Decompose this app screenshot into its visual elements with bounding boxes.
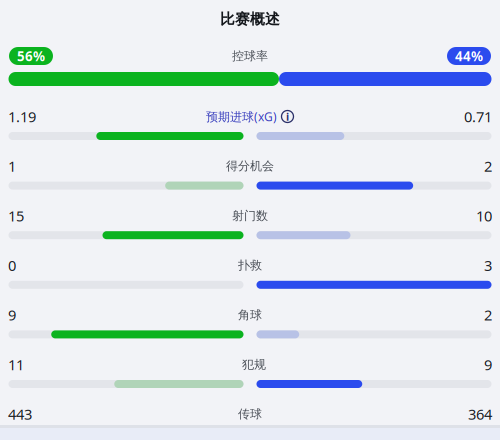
- staticText: 9: [484, 355, 492, 374]
- staticText: 2: [484, 305, 492, 325]
- staticText: 控球率: [232, 49, 268, 63]
- button[interactable]: 关于预期进球 xG: [206, 108, 294, 124]
- staticText: 1: [8, 156, 16, 176]
- staticText: 44%: [455, 47, 483, 65]
- staticText: 射门数: [232, 208, 268, 223]
- staticText: 扑救: [238, 258, 262, 273]
- staticText: 预期进球(xG): [206, 108, 277, 124]
- staticText: 9: [8, 305, 16, 325]
- staticText: 0.71: [464, 107, 492, 126]
- staticText: 得分机会: [226, 159, 274, 173]
- staticText: 10: [476, 206, 492, 225]
- staticText: 2: [484, 156, 492, 176]
- staticText: 443: [8, 404, 32, 424]
- staticText: 角球: [238, 307, 262, 322]
- staticText: 56%: [17, 47, 45, 65]
- button[interactable]: 56%: [9, 47, 53, 65]
- button[interactable]: 44%: [447, 47, 491, 65]
- staticText: 15: [8, 206, 24, 225]
- staticText: 0: [8, 256, 16, 275]
- staticText: 1.19: [8, 107, 36, 126]
- staticText: 传球: [238, 407, 262, 421]
- staticText: 3: [484, 256, 492, 275]
- staticText: i: [286, 109, 289, 124]
- staticText: 犯规: [242, 357, 266, 372]
- staticText: 比赛概述: [220, 10, 280, 28]
- staticText: 364: [468, 404, 492, 424]
- staticText: 11: [8, 355, 24, 374]
